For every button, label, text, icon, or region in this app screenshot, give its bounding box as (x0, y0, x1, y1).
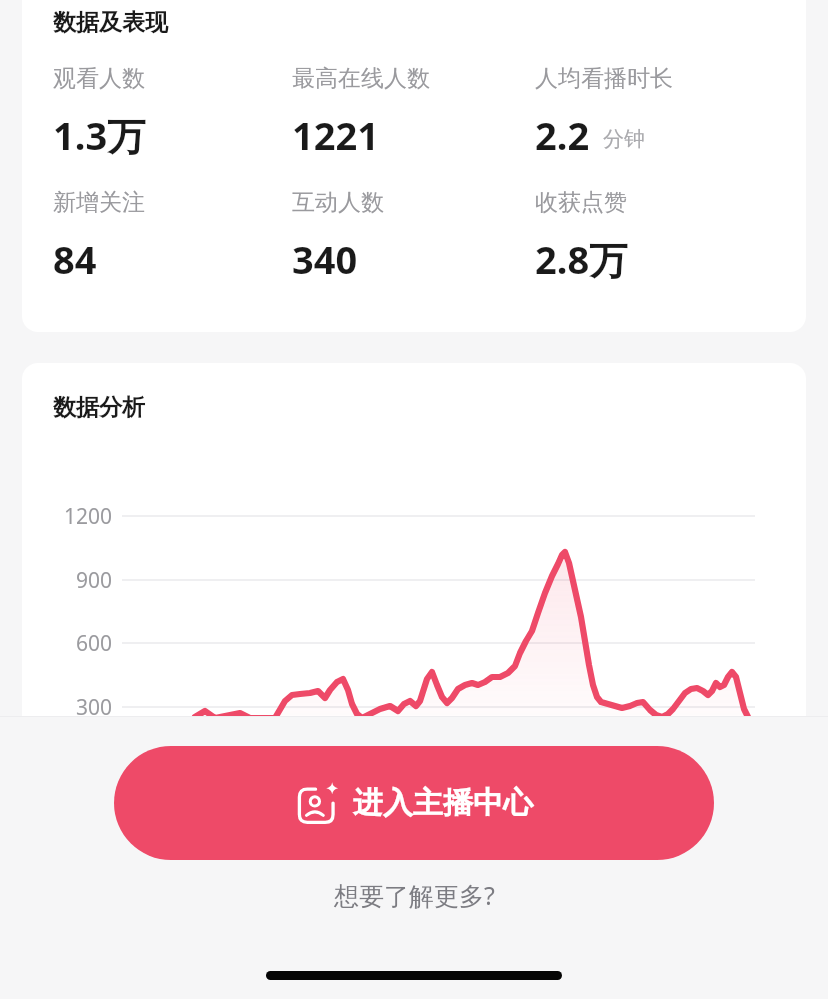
staticText: 300 (75, 693, 112, 722)
staticText: 数据及表现 (53, 8, 168, 37)
staticText: 互动人数 (292, 188, 384, 217)
staticText: 900 (75, 566, 112, 595)
staticText: 1221 (292, 109, 379, 156)
staticText: 想要了解更多? (334, 878, 495, 912)
staticText: 分钟 (603, 126, 645, 152)
button[interactable]: 进入主播中心 (114, 746, 714, 860)
other: 进入主播中心 (295, 781, 339, 825)
staticText: 新增关注 (53, 188, 145, 217)
staticText: 2.8万 (535, 233, 628, 280)
staticText: 最高在线人数 (292, 64, 430, 93)
staticText: 观看人数 (53, 64, 145, 93)
button[interactable]: 想要了解更多? (0, 878, 828, 912)
staticText: 数据分析 (53, 393, 145, 422)
staticText: 2.2 (535, 109, 590, 156)
staticText: 340 (292, 233, 358, 280)
staticText: 600 (75, 629, 112, 658)
staticText: 84 (53, 233, 97, 280)
staticText: 人均看播时长 (535, 64, 673, 93)
staticText: 1.3万 (53, 109, 146, 156)
staticText: 进入主播中心 (353, 784, 533, 822)
staticText: 1200 (63, 502, 112, 531)
staticText: 收获点赞 (535, 188, 627, 217)
